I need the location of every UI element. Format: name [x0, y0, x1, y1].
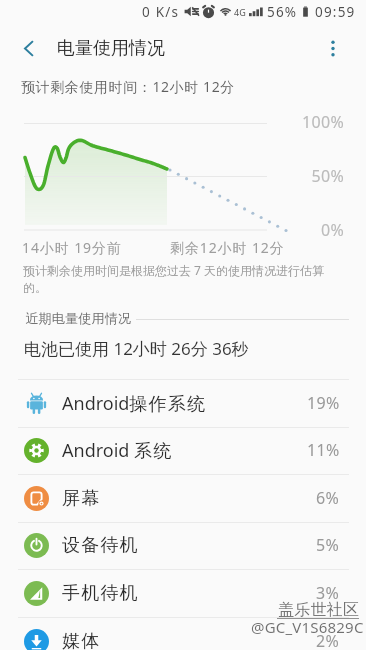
staticText: 电池已使用 12小时 26分 36秒: [24, 337, 249, 360]
staticText: 盖乐世社区: [278, 600, 359, 620]
staticText: 剩余12小时 12分: [170, 238, 285, 257]
staticText: 11%: [307, 439, 340, 461]
staticText: 媒体: [62, 630, 101, 650]
button[interactable]: 屏幕: [0, 474, 366, 522]
staticText: 电量使用情况: [57, 37, 165, 60]
staticText: 0 K/s: [142, 3, 180, 21]
staticText: Android 系统: [62, 438, 173, 463]
staticText: 预计剩余使用时间是根据您过去 7 天的使用情况进行估算的。: [23, 262, 335, 295]
staticText: 预计剩余使用时间：12小时 12分: [21, 77, 235, 96]
staticText: 3%: [316, 582, 340, 604]
staticText: 手机待机: [62, 582, 139, 605]
staticText: 14小时 19分前: [22, 238, 122, 257]
button[interactable]: Android 系统: [0, 426, 366, 474]
button[interactable]: Back: [6, 26, 50, 70]
staticText: 屏幕: [62, 487, 101, 510]
staticText: @GC_V1S6829C: [251, 617, 364, 637]
button[interactable]: More options: [311, 26, 355, 70]
staticText: 6%: [316, 487, 340, 509]
staticText: 56%: [267, 3, 298, 21]
staticText: 设备待机: [62, 534, 139, 557]
button[interactable]: 设备待机: [0, 521, 366, 569]
button[interactable]: 手机待机: [0, 569, 366, 617]
staticText: 100%: [264, 111, 344, 133]
button[interactable]: 媒体: [0, 617, 366, 650]
button[interactable]: Android操作系统: [0, 379, 366, 427]
staticText: 4G: [234, 6, 246, 18]
staticText: 2%: [316, 630, 340, 650]
staticText: 5%: [316, 534, 340, 556]
staticText: 19%: [307, 392, 340, 414]
staticText: 0%: [264, 219, 344, 241]
staticText: 09:59: [315, 3, 356, 21]
staticText: 50%: [264, 165, 344, 187]
staticText: Android操作系统: [62, 391, 207, 416]
staticText: 近期电量使用情况: [25, 310, 131, 326]
